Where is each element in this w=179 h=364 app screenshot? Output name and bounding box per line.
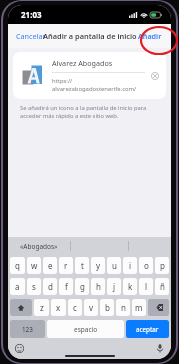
staticText: o bbox=[144, 260, 149, 271]
button[interactable]: t bbox=[75, 257, 89, 274]
button[interactable]: m bbox=[132, 299, 146, 316]
button[interactable]: l bbox=[139, 278, 153, 295]
staticText: Alvarez Abogados bbox=[52, 58, 113, 68]
button[interactable]: espacio bbox=[47, 320, 124, 338]
button[interactable]: f bbox=[59, 278, 73, 295]
staticText: k bbox=[128, 281, 133, 292]
staticText: v bbox=[89, 302, 94, 313]
button[interactable]: a bbox=[10, 278, 25, 295]
button[interactable]: n bbox=[116, 299, 130, 316]
staticText: s bbox=[32, 281, 36, 292]
button[interactable]: q bbox=[10, 257, 25, 274]
staticText: Cancelar bbox=[16, 31, 46, 41]
staticText: Añadir a pantalla de inicio bbox=[43, 31, 137, 41]
button[interactable]: j bbox=[107, 278, 121, 295]
button[interactable]: u bbox=[107, 257, 121, 274]
button[interactable]: k bbox=[123, 278, 137, 295]
button[interactable]: ñ bbox=[155, 278, 169, 295]
staticText: Se añadirá un icono a la pantalla de ini… bbox=[20, 104, 153, 120]
button[interactable]: Mayúsculas bbox=[10, 299, 32, 316]
staticText: https://alvarezabogadostenerife.com/ bbox=[52, 77, 145, 93]
staticText: «Abogados» bbox=[20, 242, 58, 251]
staticText: f bbox=[65, 281, 68, 292]
button[interactable]: x bbox=[51, 299, 66, 316]
button[interactable]: aceptar bbox=[126, 320, 169, 338]
button[interactable]: i bbox=[123, 257, 137, 274]
staticText: ñ bbox=[160, 281, 165, 292]
button[interactable]: y bbox=[91, 257, 105, 274]
button[interactable]: s bbox=[27, 278, 41, 295]
staticText: d bbox=[48, 281, 53, 292]
staticText: j bbox=[113, 281, 116, 292]
button[interactable]: Añadir bbox=[129, 26, 171, 46]
staticText: z bbox=[40, 302, 44, 313]
button[interactable]: d bbox=[43, 278, 57, 295]
staticText: u bbox=[112, 260, 117, 271]
staticText: y bbox=[96, 260, 101, 271]
staticText: i bbox=[129, 260, 132, 271]
button[interactable]: e bbox=[43, 257, 57, 274]
staticText: w bbox=[31, 260, 38, 271]
staticText: n bbox=[121, 302, 126, 313]
button[interactable]: g bbox=[75, 278, 89, 295]
button[interactable]: v bbox=[84, 299, 98, 316]
staticText: t bbox=[81, 260, 84, 271]
staticText: 123 bbox=[22, 325, 33, 334]
button[interactable]: o bbox=[139, 257, 153, 274]
staticText: l bbox=[145, 281, 148, 292]
staticText: a bbox=[15, 281, 20, 292]
staticText: espacio bbox=[74, 325, 98, 334]
staticText: m bbox=[135, 302, 143, 313]
button[interactable]: Emoji bbox=[13, 342, 25, 354]
staticText: Añadir bbox=[138, 31, 162, 41]
button[interactable]: «Abogados» bbox=[16, 240, 62, 253]
button[interactable]: z bbox=[34, 299, 49, 316]
staticText: b bbox=[105, 302, 110, 313]
staticText: r bbox=[64, 260, 68, 271]
staticText: g bbox=[80, 281, 85, 292]
button[interactable]: b bbox=[100, 299, 114, 316]
button[interactable]: Retroceso bbox=[148, 299, 169, 316]
staticText: c bbox=[73, 302, 77, 313]
button[interactable]: Cancelar bbox=[8, 26, 54, 46]
button[interactable]: p bbox=[155, 257, 169, 274]
staticText: p bbox=[160, 260, 165, 271]
button[interactable]: c bbox=[68, 299, 82, 316]
staticText: h bbox=[96, 281, 101, 292]
button[interactable]: Alvarez Abogados bbox=[13, 52, 166, 99]
button[interactable]: 123 bbox=[10, 320, 45, 338]
button[interactable]: h bbox=[91, 278, 105, 295]
staticText: x bbox=[56, 302, 61, 313]
staticText: 21:03 bbox=[21, 9, 42, 20]
staticText: aceptar bbox=[136, 325, 159, 334]
button[interactable]: r bbox=[59, 257, 73, 274]
button[interactable]: w bbox=[27, 257, 41, 274]
button[interactable]: Borrar texto bbox=[148, 69, 161, 82]
staticText: e bbox=[48, 260, 53, 271]
button[interactable]: Dictado bbox=[154, 342, 166, 354]
staticText: q bbox=[15, 260, 20, 271]
